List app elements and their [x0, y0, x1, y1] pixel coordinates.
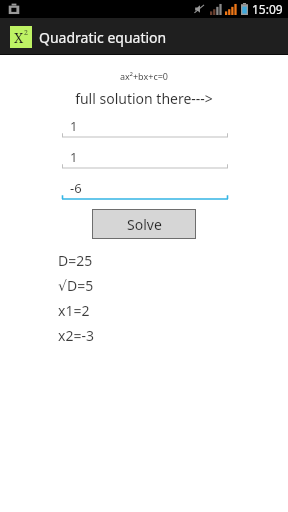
button[interactable]: -6 — [62, 178, 228, 200]
staticText: X — [14, 28, 24, 47]
staticText: √D=5 — [58, 276, 94, 295]
staticText: Quadratic equation — [39, 28, 167, 47]
staticText: Solve — [127, 215, 162, 234]
staticText: full solution there---> — [0, 89, 288, 108]
staticText: 2 — [24, 28, 28, 38]
staticText: D=25 — [58, 251, 93, 270]
staticText: ax²+bx+c=0 — [0, 70, 288, 82]
staticText: x1=2 — [58, 301, 90, 320]
staticText: x2=-3 — [58, 326, 94, 345]
button[interactable]: Solve — [92, 209, 196, 239]
staticText: -6 — [70, 179, 82, 197]
button[interactable]: 1 — [62, 147, 228, 169]
staticText: 1 — [70, 148, 78, 166]
staticText: 1 — [70, 117, 78, 135]
button[interactable]: 1 — [62, 116, 228, 138]
staticText: 15:09 — [252, 1, 283, 17]
